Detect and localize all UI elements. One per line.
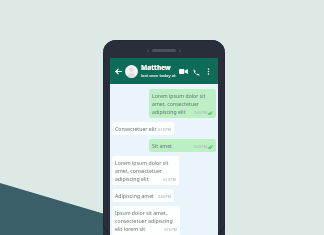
button[interactable]: Ipsum dolor sit amet, — [112, 206, 180, 235]
staticText: amet, consectetuer — [152, 100, 199, 107]
staticText: Lorem ipsum dolor sit — [115, 159, 169, 166]
staticText: Adipiscing amet — [115, 192, 154, 199]
staticText: 3:18 PM — [158, 127, 171, 132]
button[interactable]: Adipiscing amet — [112, 189, 174, 202]
staticText: Ipsum dolor sit amet, — [115, 209, 168, 216]
button[interactable]: Call — [190, 65, 203, 78]
staticText: Sit amet — [152, 142, 172, 149]
button[interactable]: Video call — [177, 65, 190, 78]
staticText: consectetuer adipiscing — [115, 217, 173, 224]
staticText: 3:20 PM — [194, 144, 207, 149]
staticText: 3:13 PM — [163, 177, 176, 182]
staticText: Consectetuer elit — [115, 125, 157, 132]
button[interactable]: Matthew — [141, 63, 177, 79]
staticText: adipiscing elit — [152, 108, 186, 115]
button[interactable]: More options — [203, 66, 214, 77]
staticText: 3:20 PM — [158, 194, 171, 199]
staticText: Matthew — [141, 63, 171, 72]
staticText: amet, consectetuer — [115, 167, 162, 174]
button[interactable]: Lorem ipsum dolor sit — [112, 156, 179, 185]
staticText: 3:43 PM — [194, 110, 207, 115]
button[interactable]: Lorem ipsum dolor sit — [149, 89, 216, 118]
button[interactable]: Contact photo — [125, 65, 138, 78]
staticText: elit lorem sit — [115, 225, 146, 232]
staticText: last seen today at 13:25 — [141, 73, 177, 79]
button[interactable]: Consectetuer elit — [112, 122, 174, 135]
staticText: 3:16 PM — [164, 227, 177, 232]
staticText: Lorem ipsum dolor sit — [152, 92, 206, 99]
button[interactable]: Sit amet — [149, 139, 216, 152]
button[interactable]: Back — [113, 66, 124, 77]
staticText: adipiscing elit — [115, 175, 149, 182]
